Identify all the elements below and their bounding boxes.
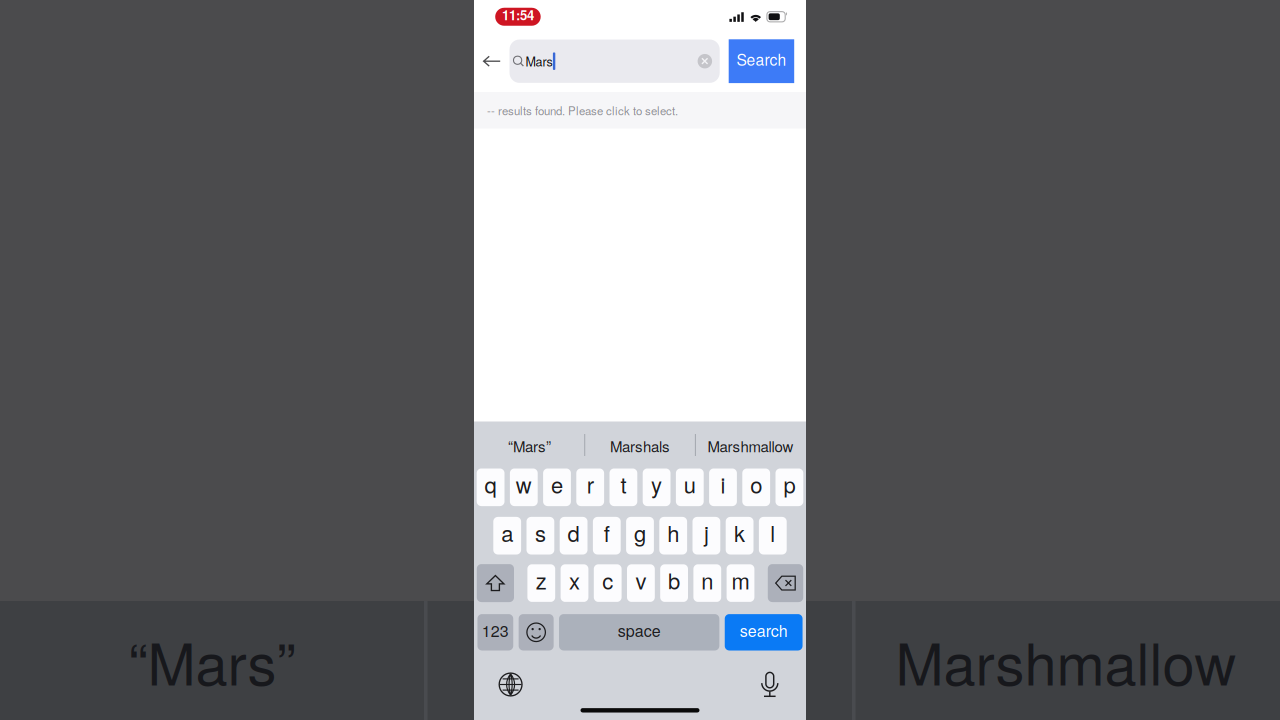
button[interactable]: Marshals <box>585 421 695 468</box>
button[interactable]: a <box>493 517 521 554</box>
button[interactable]: d <box>560 517 587 554</box>
staticText: d <box>568 517 580 548</box>
staticText: -- results found. Please click to select… <box>487 102 678 118</box>
staticText: r <box>587 468 594 500</box>
staticText: m <box>731 564 749 596</box>
staticText: f <box>604 517 610 548</box>
button[interactable]: r <box>576 468 604 506</box>
button[interactable]: Delete <box>768 564 803 602</box>
staticText: j <box>704 517 709 548</box>
staticText: b <box>668 564 680 596</box>
button[interactable]: c <box>594 564 622 602</box>
staticText: w <box>516 468 532 500</box>
staticText: Marshmallow <box>708 435 794 457</box>
staticText: q <box>485 468 497 500</box>
button[interactable]: search <box>725 614 803 650</box>
staticText: s <box>535 517 546 548</box>
staticText: a <box>501 517 513 548</box>
button[interactable]: h <box>659 517 687 554</box>
staticText: Mars <box>525 52 552 70</box>
staticText: “Mars” <box>508 435 551 457</box>
staticText: k <box>734 517 745 548</box>
staticText: t <box>620 468 626 500</box>
staticText: “Mars” <box>128 619 295 702</box>
button[interactable]: Dictation <box>748 666 792 702</box>
staticText: search <box>740 618 788 641</box>
button[interactable]: b <box>660 564 688 602</box>
button[interactable]: n <box>693 564 721 602</box>
button[interactable]: q <box>477 468 504 506</box>
button[interactable]: o <box>742 468 770 506</box>
staticText: 11:54 <box>502 5 534 24</box>
staticText: c <box>602 564 613 596</box>
button[interactable]: s <box>526 517 554 554</box>
staticText: p <box>783 468 795 500</box>
button[interactable]: y <box>643 468 670 506</box>
staticText: y <box>651 468 662 500</box>
staticText: Marshals <box>610 435 670 457</box>
button[interactable]: Back <box>474 39 509 83</box>
staticText: e <box>551 468 563 500</box>
staticText: x <box>569 564 580 596</box>
button[interactable]: j <box>692 517 720 554</box>
staticText: v <box>635 564 646 596</box>
button[interactable]: m <box>727 564 754 602</box>
button[interactable]: Emoji <box>519 614 554 650</box>
staticText: h <box>667 517 679 548</box>
button[interactable]: Search <box>729 39 794 83</box>
button[interactable]: e <box>543 468 571 506</box>
button[interactable]: Marshmallow <box>695 421 806 468</box>
button[interactable]: k <box>726 517 753 554</box>
button[interactable]: w <box>510 468 538 506</box>
button[interactable]: i <box>709 468 737 506</box>
button[interactable]: u <box>676 468 704 506</box>
staticText: g <box>634 517 646 548</box>
staticText: l <box>770 517 775 548</box>
staticText: i <box>720 468 725 500</box>
staticText: o <box>750 468 762 500</box>
staticText: Search <box>736 48 786 70</box>
button[interactable]: v <box>627 564 655 602</box>
button[interactable]: t <box>609 468 637 506</box>
button[interactable]: Change keyboard <box>489 666 533 702</box>
button[interactable]: f <box>593 517 621 554</box>
staticText: u <box>684 468 696 500</box>
staticText: space <box>618 618 661 641</box>
button[interactable]: Shift <box>477 564 514 602</box>
button[interactable]: g <box>626 517 654 554</box>
button[interactable]: space <box>559 614 719 650</box>
staticText: n <box>701 564 713 596</box>
button[interactable]: l <box>759 517 787 554</box>
staticText: z <box>536 564 547 596</box>
staticText: 123 <box>482 618 509 641</box>
button[interactable]: z <box>527 564 555 602</box>
staticText: Marshmallow <box>895 619 1236 702</box>
button[interactable]: x <box>561 564 588 602</box>
button[interactable]: 123 <box>477 614 513 650</box>
button[interactable]: “Mars” <box>474 421 585 468</box>
button[interactable]: p <box>775 468 803 506</box>
button[interactable]: Mars <box>509 39 720 83</box>
